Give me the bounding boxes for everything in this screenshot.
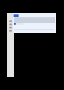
button[interactable]: Navigation item [7,20,14,23]
button[interactable]: Navigation item [7,29,14,32]
button[interactable] [13,27,56,33]
button[interactable]: Navigation item [7,26,14,29]
button[interactable]: App bar [13,13,56,17]
button[interactable] [13,23,56,27]
button[interactable] [13,17,56,23]
button[interactable]: Navigation item [7,23,14,26]
